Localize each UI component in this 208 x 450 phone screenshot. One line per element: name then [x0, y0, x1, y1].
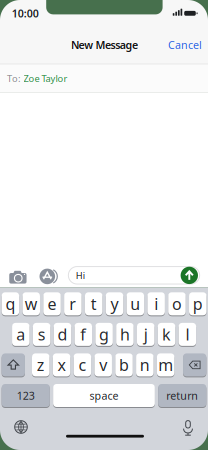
button[interactable]: y: [106, 292, 123, 315]
button[interactable]: p: [189, 292, 206, 315]
button[interactable]: u: [127, 292, 144, 315]
button[interactable]: q: [2, 292, 19, 315]
button[interactable]: space: [53, 384, 155, 407]
staticText: n: [140, 354, 150, 375]
button[interactable]: s: [33, 323, 50, 346]
staticText: h: [120, 324, 130, 345]
staticText: e: [47, 293, 56, 314]
button[interactable]: c: [74, 353, 91, 376]
button[interactable]: Next keyboard: [15, 421, 27, 433]
button[interactable]: To:: [0, 64, 208, 92]
staticText: Cancel: [168, 38, 202, 52]
button[interactable]: Apps: [38, 269, 56, 284]
button[interactable]: m: [157, 353, 174, 376]
staticText: i: [154, 293, 158, 314]
staticText: w: [25, 293, 38, 314]
staticText: r: [69, 293, 76, 314]
staticText: To:: [7, 72, 21, 84]
staticText: v: [99, 354, 107, 375]
staticText: k: [162, 324, 171, 345]
button[interactable]: Shift: [2, 353, 25, 376]
staticText: f: [80, 324, 86, 345]
staticText: j: [144, 324, 148, 345]
staticText: u: [130, 293, 140, 314]
button[interactable]: Hi: [68, 267, 200, 284]
button[interactable]: v: [94, 353, 112, 376]
button[interactable]: return: [158, 384, 206, 407]
button[interactable]: x: [53, 353, 70, 376]
staticText: l: [185, 324, 189, 345]
button[interactable]: w: [22, 292, 40, 315]
button[interactable]: Send: [181, 267, 198, 284]
button[interactable]: b: [115, 353, 133, 376]
button[interactable]: i: [147, 292, 165, 315]
button[interactable]: t: [85, 292, 102, 315]
button[interactable]: l: [179, 323, 196, 346]
staticText: New Message: [71, 38, 138, 52]
staticText: Zoe Taylor: [23, 72, 67, 84]
button[interactable]: 123: [2, 384, 50, 407]
staticText: a: [16, 324, 25, 345]
button[interactable]: h: [116, 323, 134, 346]
button[interactable]: z: [32, 353, 49, 376]
button[interactable]: a: [12, 323, 30, 346]
staticText: y: [110, 293, 118, 314]
staticText: s: [38, 324, 46, 345]
button[interactable]: Cancel: [168, 38, 202, 52]
staticText: g: [99, 324, 109, 345]
button[interactable]: g: [95, 323, 113, 346]
button[interactable]: f: [74, 323, 92, 346]
button[interactable]: d: [54, 323, 71, 346]
staticText: p: [193, 293, 203, 314]
button[interactable]: Camera: [9, 270, 26, 284]
staticText: Hi: [76, 269, 85, 281]
staticText: c: [78, 354, 86, 375]
button[interactable]: k: [158, 323, 175, 346]
staticText: q: [5, 293, 15, 314]
button[interactable]: o: [168, 292, 186, 315]
staticText: 123: [17, 388, 35, 403]
button[interactable]: n: [136, 353, 154, 376]
button[interactable]: Dictation: [183, 420, 193, 434]
staticText: space: [89, 388, 118, 403]
staticText: d: [57, 324, 67, 345]
staticText: x: [58, 354, 66, 375]
staticText: t: [91, 293, 97, 314]
staticText: 10:00: [12, 6, 39, 20]
button[interactable]: r: [64, 292, 82, 315]
button[interactable]: Delete: [183, 353, 206, 376]
staticText: z: [37, 354, 45, 375]
button[interactable]: e: [43, 292, 61, 315]
staticText: b: [119, 354, 129, 375]
staticText: o: [172, 293, 182, 314]
staticText: m: [158, 354, 173, 375]
button[interactable]: j: [137, 323, 154, 346]
staticText: return: [166, 388, 198, 403]
